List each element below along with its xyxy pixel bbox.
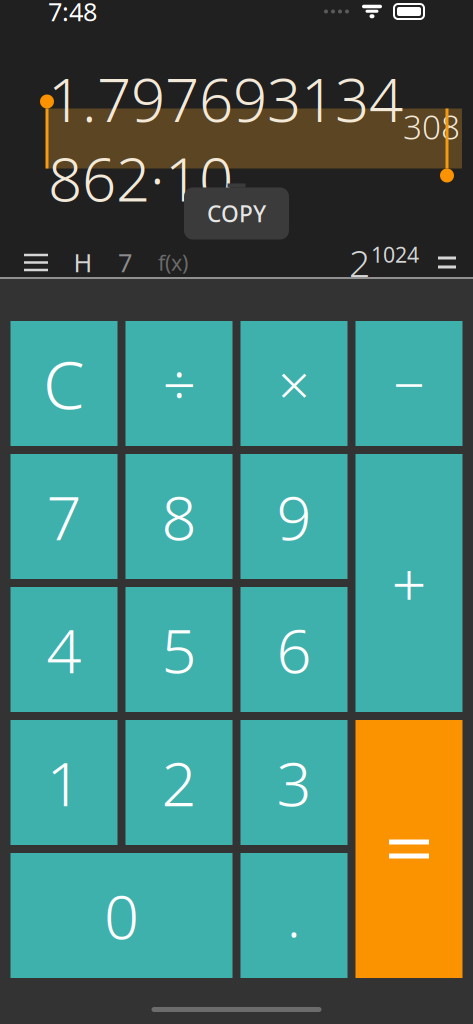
- button[interactable]: ÷: [125, 321, 232, 446]
- staticText: 9: [276, 476, 311, 557]
- staticText: 3: [276, 742, 311, 823]
- button[interactable]: 0: [10, 853, 232, 978]
- button[interactable]: .: [240, 853, 347, 978]
- staticText: −: [393, 346, 425, 421]
- staticText: 7:48: [48, 0, 97, 28]
- staticText: 8: [161, 476, 196, 557]
- staticText: C: [43, 339, 85, 428]
- button[interactable]: C: [10, 321, 117, 446]
- button[interactable]: Menu: [10, 242, 62, 282]
- button[interactable]: H: [62, 242, 104, 282]
- staticText: 0: [104, 875, 139, 956]
- staticText: H: [73, 246, 92, 279]
- staticText: 308: [403, 104, 460, 149]
- staticText: .: [287, 878, 301, 953]
- button[interactable]: −: [355, 321, 462, 446]
- button[interactable]: Show result: [431, 242, 463, 282]
- staticText: +: [391, 542, 426, 624]
- staticText: f(x): [158, 248, 188, 277]
- button[interactable]: 2: [125, 720, 232, 845]
- staticText: 7: [118, 246, 132, 279]
- staticText: 2: [161, 742, 196, 823]
- button[interactable]: ×: [240, 321, 347, 446]
- button[interactable]: COPY: [184, 187, 289, 239]
- staticText: 1024: [371, 240, 419, 269]
- staticText: 4: [46, 609, 81, 690]
- button[interactable]: 6: [240, 587, 347, 712]
- staticText: ×: [278, 346, 310, 421]
- button[interactable]: 2: [349, 242, 419, 282]
- staticText: 1: [46, 742, 81, 823]
- staticText: 7: [46, 476, 81, 557]
- button[interactable]: 4: [10, 587, 117, 712]
- button[interactable]: 5: [125, 587, 232, 712]
- staticText: 1.797693134862·10: [48, 59, 403, 218]
- button[interactable]: f(x): [146, 242, 200, 282]
- button[interactable]: 7: [10, 454, 117, 579]
- button[interactable]: 3: [240, 720, 347, 845]
- staticText: 5: [161, 609, 196, 690]
- button[interactable]: 9: [240, 454, 347, 579]
- staticText: 6: [276, 609, 311, 690]
- staticText: ÷: [162, 344, 195, 422]
- button[interactable]: +: [355, 454, 462, 712]
- button[interactable]: 8: [125, 454, 232, 579]
- button[interactable]: 7: [104, 242, 146, 282]
- button[interactable]: Equals: [355, 720, 462, 978]
- staticText: 2: [349, 238, 370, 287]
- staticText: COPY: [207, 198, 266, 228]
- button[interactable]: 1: [10, 720, 117, 845]
